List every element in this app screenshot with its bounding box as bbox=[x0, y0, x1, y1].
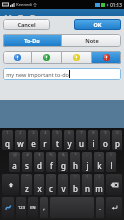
button[interactable]: 1 bbox=[2, 130, 13, 150]
button[interactable]: Cancel bbox=[3, 19, 50, 30]
staticText: $ bbox=[38, 152, 41, 157]
staticText: r bbox=[43, 138, 47, 149]
staticText: ? bbox=[86, 174, 88, 179]
staticText: 9 bbox=[104, 130, 107, 135]
staticText: 1 bbox=[6, 130, 9, 135]
staticText: t bbox=[56, 138, 59, 149]
button[interactable]: . bbox=[96, 197, 104, 218]
staticText: k bbox=[97, 160, 102, 171]
staticText: Note bbox=[85, 37, 99, 44]
staticText: o bbox=[103, 138, 108, 149]
staticText: i bbox=[92, 138, 95, 149]
staticText: * bbox=[74, 152, 77, 157]
staticText: 6 bbox=[68, 130, 71, 135]
staticText: & bbox=[62, 152, 65, 157]
button[interactable]: EN bbox=[28, 197, 38, 218]
button[interactable]: 0 bbox=[112, 130, 122, 150]
button[interactable]: ) bbox=[94, 174, 104, 195]
button[interactable]: ! bbox=[70, 174, 80, 195]
staticText: 4 bbox=[44, 130, 47, 135]
button[interactable]: Priority 3 bbox=[62, 51, 91, 64]
button[interactable]: Note bbox=[62, 34, 121, 47]
button[interactable]: 7 bbox=[76, 130, 86, 150]
staticText: b bbox=[73, 183, 78, 194]
button[interactable]: To-Do bbox=[3, 34, 61, 47]
button[interactable]: ? bbox=[82, 174, 92, 195]
staticText: p bbox=[115, 138, 120, 149]
button[interactable]: & bbox=[58, 152, 68, 172]
staticText: 8 bbox=[92, 130, 95, 135]
staticText: ; bbox=[62, 174, 64, 179]
staticText: . bbox=[99, 204, 101, 212]
button[interactable]: 8 bbox=[88, 130, 98, 150]
button[interactable]: Backspace bbox=[106, 174, 122, 195]
staticText: a bbox=[12, 160, 17, 171]
staticText: 123 bbox=[18, 205, 25, 210]
staticText: " bbox=[26, 174, 28, 179]
button[interactable]: * bbox=[70, 152, 80, 172]
button[interactable]: + bbox=[94, 152, 104, 172]
button[interactable]: 5 bbox=[52, 130, 62, 150]
staticText: ! bbox=[74, 174, 76, 179]
staticText: c bbox=[49, 183, 53, 194]
button[interactable]: ' bbox=[34, 174, 44, 195]
staticText: ' bbox=[39, 174, 40, 179]
button[interactable]: - bbox=[82, 152, 92, 172]
button[interactable]: $ bbox=[34, 152, 44, 172]
staticText: w bbox=[17, 138, 24, 149]
staticText: - bbox=[86, 152, 88, 157]
button[interactable]: 6 bbox=[64, 130, 74, 150]
button[interactable]: 9 bbox=[100, 130, 110, 150]
button[interactable]: , bbox=[40, 197, 48, 218]
staticText: j bbox=[86, 160, 89, 171]
staticText: 01:13 bbox=[110, 2, 122, 8]
button[interactable]: 2 bbox=[15, 130, 26, 150]
staticText: h bbox=[73, 160, 78, 171]
staticText: # bbox=[26, 152, 29, 157]
button[interactable]: % bbox=[46, 152, 56, 172]
staticText: d bbox=[37, 160, 42, 171]
staticText: ) bbox=[98, 174, 100, 179]
button[interactable]: my new important to-do bbox=[3, 68, 121, 80]
button[interactable]: Enter bbox=[106, 197, 122, 218]
staticText: y bbox=[67, 138, 72, 149]
staticText: 2 bbox=[19, 130, 22, 135]
button[interactable]: 4 bbox=[40, 130, 50, 150]
button[interactable]: Handwriting input bbox=[2, 197, 14, 218]
staticText: s bbox=[25, 160, 29, 171]
staticText: l bbox=[110, 160, 113, 171]
staticText: To-Do bbox=[24, 37, 40, 44]
button[interactable]: 3 bbox=[28, 130, 38, 150]
button[interactable]: Priority 4 bbox=[92, 51, 121, 64]
staticText: 0 bbox=[116, 130, 119, 135]
button[interactable]: OK bbox=[74, 19, 121, 30]
staticText: g bbox=[61, 160, 66, 171]
staticText: Kennedi bbox=[16, 2, 32, 7]
staticText: my new important to-do bbox=[6, 71, 69, 78]
button[interactable]: Space bbox=[50, 197, 94, 218]
button[interactable]: # bbox=[22, 152, 32, 172]
staticText: 7 bbox=[80, 130, 83, 135]
button[interactable]: Priority 1 bbox=[3, 51, 31, 64]
staticText: e bbox=[31, 138, 36, 149]
button[interactable]: 123 bbox=[16, 197, 26, 218]
staticText: EN bbox=[30, 205, 36, 210]
button[interactable]: " bbox=[21, 174, 32, 195]
button[interactable]: ; bbox=[58, 174, 68, 195]
staticText: , bbox=[43, 204, 45, 212]
staticText: q bbox=[5, 138, 10, 149]
button[interactable]: @ bbox=[9, 152, 20, 172]
button[interactable]: Priority 2 bbox=[32, 51, 61, 64]
staticText: 5 bbox=[56, 130, 59, 135]
staticText: Cancel bbox=[17, 21, 36, 28]
staticText: u bbox=[79, 138, 84, 149]
staticText: 3 bbox=[32, 130, 35, 135]
staticText: OK bbox=[93, 21, 102, 28]
button[interactable]: ( bbox=[106, 152, 116, 172]
staticText: m bbox=[95, 183, 103, 194]
staticText: v bbox=[61, 183, 66, 194]
staticText: + bbox=[98, 152, 101, 157]
button[interactable]: Shift bbox=[2, 174, 19, 195]
button[interactable]: : bbox=[46, 174, 56, 195]
